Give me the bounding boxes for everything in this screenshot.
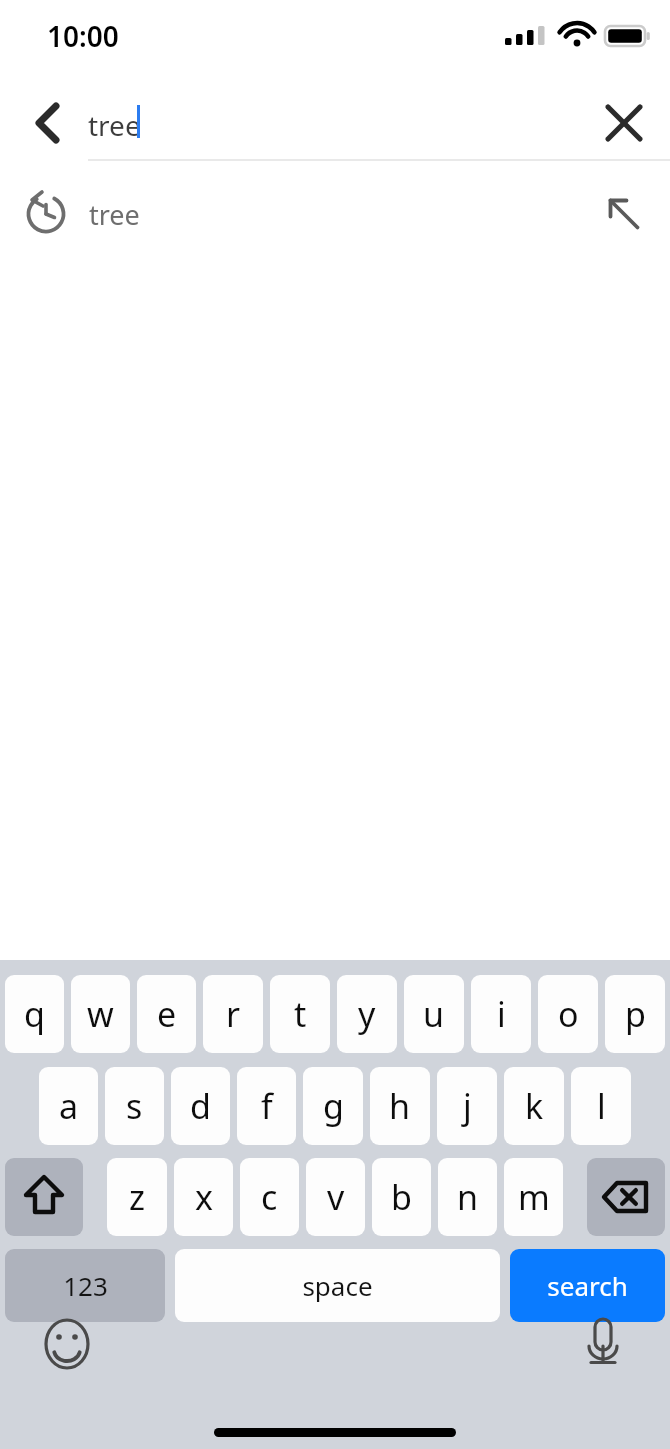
button[interactable]: j xyxy=(437,1067,497,1145)
staticText: a xyxy=(59,1083,79,1129)
staticText: 123 xyxy=(63,1268,108,1303)
staticText: p xyxy=(625,991,646,1037)
button[interactable]: z xyxy=(107,1158,167,1236)
button[interactable]: y xyxy=(337,975,397,1053)
button[interactable]: space xyxy=(175,1249,500,1322)
staticText: q xyxy=(24,991,45,1037)
button[interactable]: i xyxy=(471,975,531,1053)
button[interactable]: r xyxy=(203,975,263,1053)
staticText: y xyxy=(358,991,376,1037)
button[interactable]: 123 xyxy=(5,1249,165,1322)
staticText: c xyxy=(261,1174,278,1220)
staticText: n xyxy=(457,1174,479,1220)
staticText: v xyxy=(327,1174,345,1220)
button[interactable]: Backspace xyxy=(587,1158,665,1236)
staticText: j xyxy=(463,1083,472,1129)
staticText: x xyxy=(195,1174,213,1220)
button[interactable]: n xyxy=(438,1158,497,1236)
button[interactable]: e xyxy=(137,975,196,1053)
staticText: i xyxy=(497,991,506,1037)
button[interactable]: p xyxy=(605,975,665,1053)
button[interactable]: k xyxy=(504,1067,564,1145)
staticText: b xyxy=(391,1174,412,1220)
staticText: u xyxy=(423,991,445,1037)
button[interactable]: search xyxy=(510,1249,665,1322)
button[interactable]: m xyxy=(504,1158,563,1236)
button[interactable]: Voice input xyxy=(578,1319,628,1369)
staticText: g xyxy=(323,1083,344,1129)
button[interactable]: a xyxy=(39,1067,98,1145)
staticText: f xyxy=(261,1083,273,1129)
button[interactable]: Back xyxy=(16,93,76,153)
button[interactable]: s xyxy=(105,1067,164,1145)
button[interactable]: Shift xyxy=(5,1158,83,1236)
staticText: t xyxy=(294,991,307,1037)
staticText: r xyxy=(226,991,241,1037)
staticText: w xyxy=(87,991,114,1037)
button[interactable]: x xyxy=(174,1158,233,1236)
staticText: l xyxy=(597,1083,606,1129)
staticText: s xyxy=(126,1083,143,1129)
staticText: z xyxy=(129,1174,145,1220)
button[interactable]: Emoji xyxy=(42,1319,92,1369)
button[interactable]: d xyxy=(171,1067,230,1145)
staticText: search xyxy=(547,1268,628,1303)
button[interactable]: w xyxy=(71,975,130,1053)
staticText: o xyxy=(558,991,579,1037)
button[interactable]: tree xyxy=(0,171,670,257)
staticText: m xyxy=(518,1174,550,1220)
button[interactable]: q xyxy=(5,975,64,1053)
staticText: k xyxy=(525,1083,544,1129)
staticText: e xyxy=(157,991,177,1037)
staticText: d xyxy=(190,1083,211,1129)
staticText: space xyxy=(302,1268,373,1303)
button[interactable]: l xyxy=(571,1067,631,1145)
button[interactable]: Insert suggestion xyxy=(602,192,646,236)
button[interactable]: u xyxy=(404,975,464,1053)
button[interactable]: Clear search xyxy=(594,93,654,153)
button[interactable]: o xyxy=(538,975,598,1053)
button[interactable]: h xyxy=(370,1067,430,1145)
staticText: 10:00 xyxy=(47,17,119,55)
staticText: tree xyxy=(89,196,140,233)
button[interactable]: t xyxy=(270,975,330,1053)
staticText: tree xyxy=(88,106,141,144)
staticText: h xyxy=(389,1083,411,1129)
button[interactable]: g xyxy=(303,1067,363,1145)
button[interactable]: b xyxy=(372,1158,431,1236)
button[interactable]: v xyxy=(306,1158,365,1236)
button[interactable]: f xyxy=(237,1067,296,1145)
button[interactable]: c xyxy=(240,1158,299,1236)
